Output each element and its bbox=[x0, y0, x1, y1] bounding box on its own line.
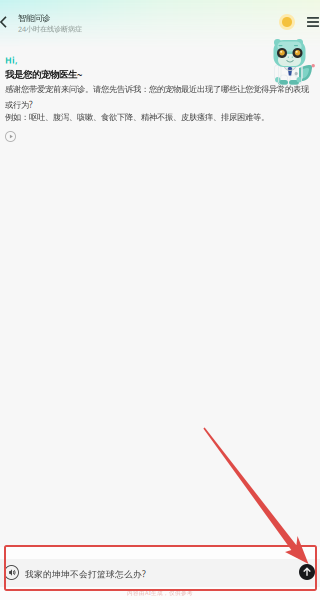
button[interactable]: Back bbox=[0, 14, 14, 30]
staticText: 内容由AI生成，仅供参考 bbox=[127, 589, 193, 597]
staticText: 24小时在线诊断病症 bbox=[18, 24, 82, 34]
button[interactable]: Play message bbox=[5, 131, 16, 142]
staticText: 例如：呕吐、腹泻、咳嗽、食欲下降、精神不振、皮肤瘙痒、排尿困难等。 bbox=[5, 112, 269, 122]
button[interactable]: Voice input bbox=[4, 565, 19, 580]
staticText: 感谢您带爱宠前来问诊。请您先告诉我：您的宠物最近出现了哪些让您觉得异常的表现或行… bbox=[5, 84, 309, 110]
staticText: 我是您的宠物医生~ bbox=[5, 68, 82, 81]
staticText: 我家的坤坤不会打篮球怎么办? bbox=[25, 568, 146, 580]
staticText: Hi, bbox=[5, 54, 18, 66]
button[interactable]: Menu bbox=[307, 17, 319, 27]
button[interactable]: Send bbox=[299, 564, 315, 580]
button[interactable]: Rewards bbox=[279, 14, 295, 30]
staticText: 智能问诊 bbox=[18, 13, 50, 24]
